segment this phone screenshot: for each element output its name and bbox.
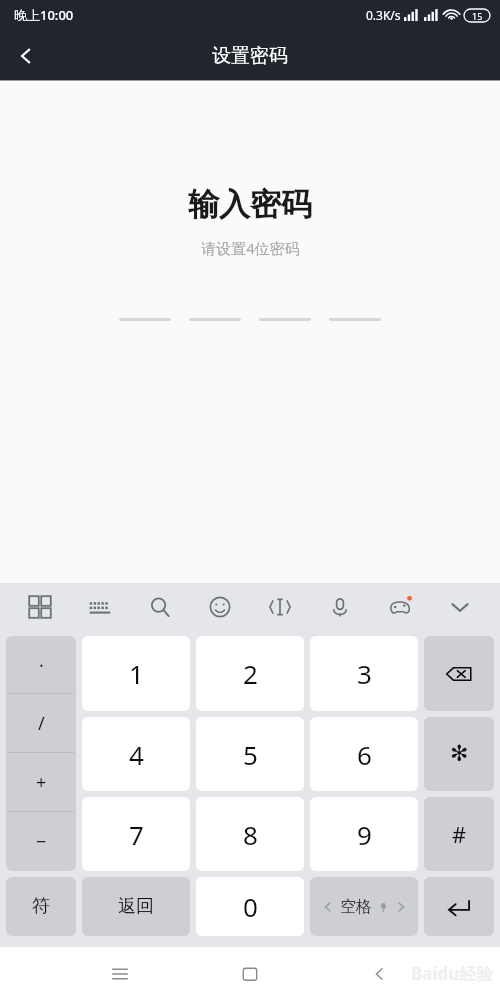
staticText: 输入密码: [188, 185, 312, 224]
staticText: Baidu经验: [411, 962, 494, 985]
staticText: /: [38, 711, 45, 736]
button[interactable]: 1: [82, 636, 190, 711]
button[interactable]: Games: [370, 583, 430, 631]
button[interactable]: Enter: [424, 877, 494, 936]
button[interactable]: Back: [357, 951, 403, 997]
staticText: 0.3K/s: [366, 7, 401, 23]
staticText: 3: [357, 656, 372, 691]
staticText: 2: [243, 656, 258, 691]
button[interactable]: 0: [196, 877, 304, 936]
button[interactable]: 2: [196, 636, 304, 711]
button[interactable]: 空格: [310, 877, 418, 936]
staticText: 晚上10:00: [14, 6, 74, 24]
button[interactable]: ✻: [424, 717, 494, 791]
button[interactable]: Home: [227, 951, 273, 997]
button[interactable]: Voice: [310, 583, 370, 631]
button[interactable]: Search: [130, 583, 190, 631]
button[interactable]: 返回: [0, 30, 52, 81]
button[interactable]: Recent apps: [97, 951, 143, 997]
staticText: 9: [357, 817, 372, 852]
staticText: ✻: [450, 741, 469, 767]
button[interactable]: 9: [310, 797, 418, 871]
staticText: 6: [357, 737, 372, 772]
button[interactable]: Emoji: [190, 583, 250, 631]
staticText: 7: [129, 817, 144, 852]
staticText: −: [36, 829, 47, 854]
button[interactable]: Apps: [10, 583, 70, 631]
button[interactable]: +: [6, 753, 76, 812]
button[interactable]: 8: [196, 797, 304, 871]
button[interactable]: ·: [6, 636, 76, 694]
button[interactable]: 符: [6, 877, 76, 936]
staticText: 请设置4位密码: [201, 238, 300, 258]
staticText: 15: [472, 10, 483, 22]
button[interactable]: #: [424, 797, 494, 871]
button[interactable]: 返回: [82, 877, 190, 936]
button[interactable]: −: [6, 812, 76, 871]
staticText: #: [452, 819, 467, 849]
staticText: 返回: [118, 895, 154, 918]
staticText: 4: [129, 737, 144, 772]
button[interactable]: 7: [82, 797, 190, 871]
button[interactable]: Hide keyboard: [430, 583, 490, 631]
button[interactable]: /: [6, 694, 76, 753]
staticText: ·: [39, 653, 44, 678]
button[interactable]: 6: [310, 717, 418, 791]
staticText: 符: [32, 895, 50, 918]
button[interactable]: Keyboard: [70, 583, 130, 631]
staticText: 1: [129, 656, 144, 691]
button[interactable]: Cursor: [250, 583, 310, 631]
staticText: 设置密码: [212, 44, 288, 68]
staticText: +: [36, 770, 47, 795]
button[interactable]: Backspace: [424, 636, 494, 711]
staticText: 8: [243, 817, 258, 852]
staticText: 0: [243, 889, 258, 924]
button[interactable]: 3: [310, 636, 418, 711]
staticText: 空格: [340, 897, 372, 917]
button[interactable]: 5: [196, 717, 304, 791]
button[interactable]: 4: [82, 717, 190, 791]
staticText: 5: [243, 737, 258, 772]
